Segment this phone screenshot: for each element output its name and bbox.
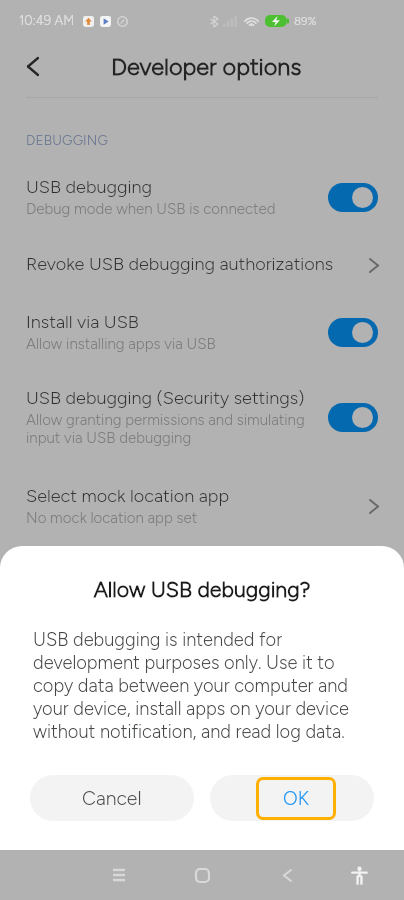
staticText: Revoke USB debugging authorizations	[26, 253, 334, 275]
staticText: Allow installing apps via USB	[26, 335, 216, 353]
staticText: 10:49 AM	[19, 13, 75, 29]
staticText: DEBUGGING	[26, 132, 109, 148]
staticText: Debug mode when USB is connected	[26, 200, 276, 218]
staticText: OK	[283, 787, 309, 810]
button[interactable]: Back	[11, 44, 55, 88]
staticText: Developer options	[111, 53, 302, 81]
staticText: Cancel	[82, 787, 142, 810]
button[interactable]: Toggle USB debugging (Security settings)	[328, 403, 378, 432]
staticText: Allow granting permissions and simulatin…	[26, 411, 305, 447]
button[interactable]: USB debugging	[0, 176, 404, 218]
button[interactable]: Home	[176, 850, 228, 900]
button[interactable]: OK	[210, 775, 374, 821]
staticText: Select mock location app	[26, 485, 230, 507]
staticText: USB debugging is intended for developmen…	[33, 629, 363, 743]
staticText: USB debugging (Security settings)	[26, 387, 305, 409]
staticText: Install via USB	[26, 311, 139, 333]
staticText: Allow USB debugging?	[0, 577, 404, 603]
button[interactable]: Back	[261, 850, 313, 900]
button[interactable]: USB debugging (Security settings)	[0, 387, 404, 447]
button[interactable]: Revoke USB debugging authorizations	[0, 253, 404, 277]
button[interactable]: Cancel	[30, 775, 194, 821]
button[interactable]: Accessibility	[333, 850, 385, 900]
staticText: 89%	[294, 14, 317, 28]
button[interactable]: Select mock location app	[0, 485, 404, 527]
button[interactable]: Install via USB	[0, 311, 404, 353]
button[interactable]: Toggle Install via USB	[328, 318, 378, 347]
button[interactable]: Toggle USB debugging	[328, 183, 378, 212]
button[interactable]: Recent apps	[93, 850, 145, 900]
staticText: USB debugging	[26, 176, 153, 198]
staticText: No mock location app set	[26, 509, 198, 527]
